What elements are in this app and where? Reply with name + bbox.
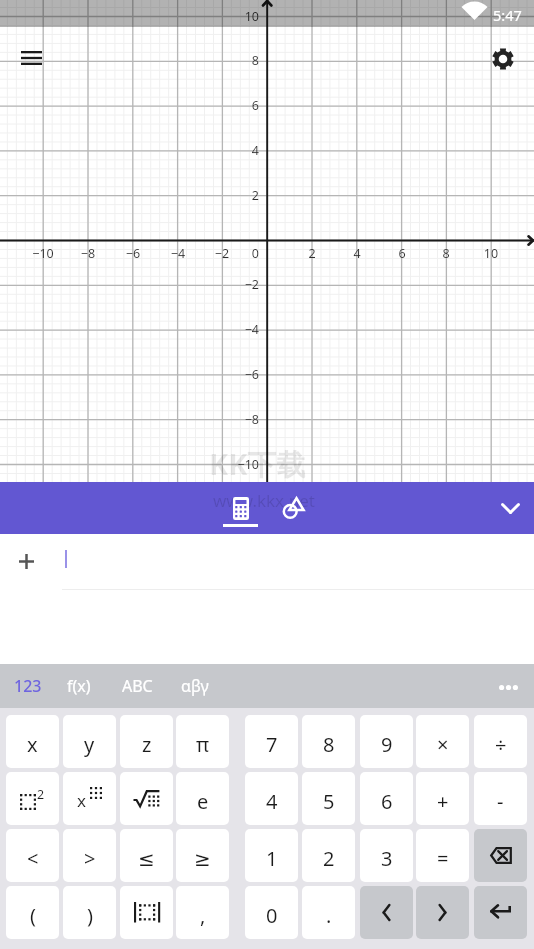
staticText: =	[437, 845, 449, 872]
button[interactable]: ×	[416, 715, 469, 768]
staticText: <	[27, 845, 39, 872]
staticText: −6	[113, 245, 153, 262]
staticText: 6	[381, 788, 393, 815]
button[interactable]: ÷	[474, 715, 527, 768]
button[interactable]: 0	[245, 886, 298, 939]
button[interactable]: Enter	[474, 886, 527, 939]
staticText: 2	[219, 187, 259, 204]
staticText: y	[84, 731, 95, 758]
button[interactable]: <	[6, 829, 59, 882]
button[interactable]: pow	[63, 772, 116, 825]
staticText: ≥	[194, 847, 211, 870]
staticText: 2	[292, 245, 332, 262]
staticText: −4	[158, 245, 198, 262]
button[interactable]: Left	[360, 886, 413, 939]
button[interactable]: e	[176, 772, 229, 825]
button[interactable]: +	[416, 772, 469, 825]
button[interactable]: f(x)	[63, 668, 95, 704]
staticText: 8	[219, 52, 259, 69]
button[interactable]: )	[63, 886, 116, 939]
button[interactable]: Add input	[3, 538, 51, 586]
button[interactable]: Collapse	[486, 482, 534, 534]
button[interactable]: 6	[360, 772, 413, 825]
button[interactable]: sqrt	[120, 772, 173, 825]
button[interactable]: Right	[416, 886, 469, 939]
staticText: 123	[14, 675, 42, 697]
staticText: −10	[219, 456, 259, 473]
button[interactable]: π	[176, 715, 229, 768]
staticText: −10	[23, 245, 63, 262]
button[interactable]: abs	[120, 886, 173, 939]
button[interactable]: 1	[245, 829, 298, 882]
button[interactable]: Calculator	[219, 482, 262, 534]
staticText: ×	[437, 731, 449, 758]
button[interactable]: x	[6, 715, 59, 768]
staticText: (	[30, 902, 36, 929]
button[interactable]: Geometry tools	[276, 482, 311, 534]
button[interactable]: 3	[360, 829, 413, 882]
button[interactable]: (	[6, 886, 59, 939]
button[interactable]: ≤	[120, 829, 173, 882]
button[interactable]: 2	[302, 829, 355, 882]
staticText: ABC	[122, 675, 153, 697]
staticText: x	[27, 731, 38, 758]
staticText: 3	[381, 845, 393, 872]
staticText: )	[87, 902, 93, 929]
button[interactable]: Settings	[478, 34, 526, 82]
button[interactable]: 8	[302, 715, 355, 768]
button[interactable]: ≥	[176, 829, 229, 882]
staticText: KK下载	[209, 444, 306, 484]
button[interactable]: αβγ	[177, 668, 213, 704]
staticText: αβγ	[181, 675, 209, 697]
staticText: 9	[381, 731, 393, 758]
staticText: 8	[323, 731, 335, 758]
staticText: −8	[68, 245, 108, 262]
staticText: 5:47	[493, 5, 522, 25]
staticText: >	[84, 845, 96, 872]
button[interactable]: 4	[245, 772, 298, 825]
staticText: ,	[200, 902, 206, 929]
staticText: 2	[37, 786, 45, 803]
staticText: ≤	[138, 847, 155, 870]
staticText: 10	[219, 8, 259, 25]
staticText: e	[197, 788, 209, 815]
button[interactable]: ,	[176, 886, 229, 939]
button[interactable]: z	[120, 715, 173, 768]
staticText: .	[326, 902, 332, 929]
staticText: 6	[382, 245, 422, 262]
staticText: www.kkx.net	[213, 489, 315, 512]
button[interactable]: sq	[6, 772, 59, 825]
button[interactable]: 9	[360, 715, 413, 768]
button[interactable]: 123	[10, 668, 46, 704]
button[interactable]: y	[63, 715, 116, 768]
button[interactable]: 5	[302, 772, 355, 825]
staticText: -	[497, 788, 504, 815]
button[interactable]: -	[474, 772, 527, 825]
staticText: 0	[219, 245, 259, 262]
button[interactable]: =	[416, 829, 469, 882]
button[interactable]: Backspace	[474, 829, 527, 882]
staticText: +	[437, 788, 449, 815]
staticText: π	[196, 731, 210, 758]
button[interactable]: Menu	[7, 34, 55, 82]
staticText: 0	[266, 902, 278, 929]
staticText: −2	[219, 276, 259, 293]
staticText: −8	[219, 411, 259, 428]
staticText: −6	[219, 366, 259, 383]
staticText: 4	[219, 142, 259, 159]
button[interactable]: ABC	[118, 668, 157, 704]
staticText: 7	[266, 731, 278, 758]
staticText: 4	[266, 788, 278, 815]
staticText: 10	[471, 245, 511, 262]
button[interactable]: >	[63, 829, 116, 882]
staticText: 5	[323, 788, 335, 815]
staticText: 4	[337, 245, 377, 262]
button[interactable]: .	[302, 886, 355, 939]
staticText: −4	[219, 321, 259, 338]
staticText: −2	[202, 245, 242, 262]
staticText: 8	[426, 245, 466, 262]
button[interactable]: 7	[245, 715, 298, 768]
staticText: x	[77, 789, 86, 812]
staticText: 1	[266, 845, 278, 872]
button[interactable]: More options	[489, 669, 528, 703]
